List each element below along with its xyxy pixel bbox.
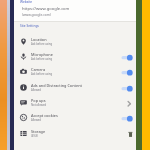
staticText: https://www.google.com: [22, 6, 70, 12]
button[interactable]: Pop ups: [14, 95, 136, 110]
button[interactable]: Camera: [14, 64, 136, 79]
staticText: Allowed: [31, 118, 41, 122]
staticText: Location: [31, 37, 47, 42]
staticText: Camera: [31, 67, 46, 72]
staticText: Site Settings: [20, 24, 39, 28]
button[interactable]: Toggle Microphone: [120, 49, 134, 64]
staticText: Ask before using: [31, 72, 53, 76]
button[interactable]: Storage: [14, 126, 136, 141]
staticText: Accept cookies: [31, 113, 58, 118]
staticText: (www.google.com): [22, 12, 51, 16]
staticText: Allowed: [31, 88, 41, 92]
button[interactable]: Location: [14, 34, 136, 49]
staticText: Ask before using: [31, 42, 53, 46]
staticText: Ads and Distracting Content: [31, 83, 83, 88]
button[interactable]: Ads and Distracting Content: [14, 80, 136, 95]
staticText: Ask before using: [31, 57, 53, 61]
staticText: Not allowed: [31, 103, 47, 107]
button[interactable]: Toggle Camera: [120, 64, 134, 79]
button[interactable]: Accept cookies: [14, 110, 136, 125]
staticText: Website: [20, 0, 33, 4]
button[interactable]: Toggle Accept cookies: [120, 110, 134, 125]
button[interactable]: Delete stored data: [120, 126, 134, 141]
button[interactable]: Microphone: [14, 49, 136, 64]
staticText: Pop ups: [31, 98, 46, 103]
staticText: Microphone: [31, 52, 53, 57]
button[interactable]: Toggle Ads and Distracting Content: [120, 80, 134, 95]
button[interactable]: Open Pop ups: [120, 95, 134, 110]
staticText: Storage: [31, 129, 46, 134]
staticText: (49.8): [31, 134, 38, 138]
